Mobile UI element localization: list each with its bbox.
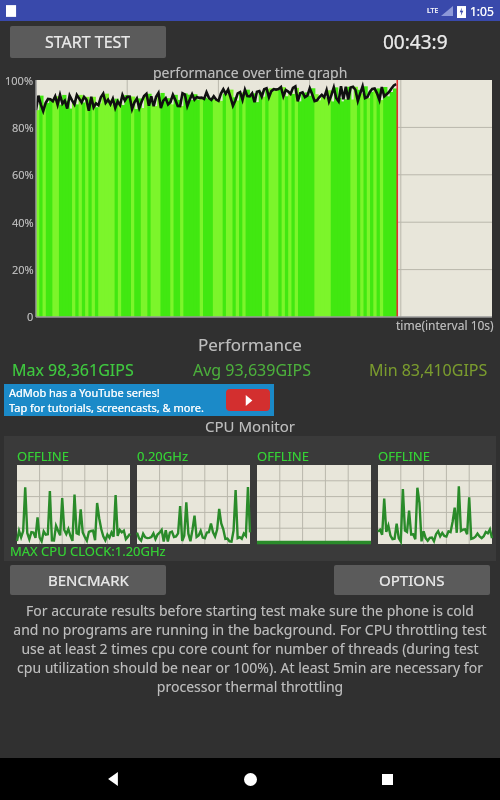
staticText: Min 83,410GIPS [369, 359, 488, 381]
staticText: OFFLINE [17, 447, 69, 465]
button[interactable]: START TEST [10, 26, 166, 58]
staticText: 0 [27, 309, 34, 324]
staticText: Tap for tutorials, screencasts, & more. [9, 400, 204, 415]
staticText: OPTIONS [379, 570, 445, 590]
button[interactable]: AdMob has a YouTube series! [4, 384, 274, 416]
staticText: 0.20GHz [137, 447, 188, 465]
staticText: 20% [12, 262, 34, 277]
staticText: CPU Monitor [0, 416, 500, 436]
button[interactable]: OPTIONS [334, 565, 490, 595]
staticText: 100% [5, 73, 34, 88]
button[interactable]: Back [89, 758, 137, 800]
staticText: For accurate results before starting tes… [12, 601, 488, 696]
staticText: Avg 93,639GIPS [193, 359, 311, 381]
staticText: AdMob has a YouTube series! [9, 385, 160, 400]
staticText: 00:43:9 [383, 29, 448, 55]
staticText: OFFLINE [257, 447, 309, 465]
staticText: Max 98,361GIPS [12, 359, 134, 381]
button[interactable]: Recent apps [363, 758, 411, 800]
staticText: MAX CPU CLOCK:1.20GHz [10, 542, 166, 560]
staticText: OFFLINE [378, 447, 430, 465]
staticText: 1:05 [470, 3, 494, 19]
staticText: Performance [198, 333, 302, 356]
staticText: 40% [12, 215, 34, 230]
staticText: LTE [427, 6, 439, 16]
staticText: time(interval 10s) [396, 317, 494, 333]
staticText: 60% [12, 167, 34, 182]
button[interactable]: Home [226, 758, 274, 800]
staticText: BENCMARK [48, 570, 129, 590]
button[interactable]: BENCMARK [10, 565, 166, 595]
staticText: 80% [12, 120, 34, 135]
staticText: performance over time graph [153, 63, 348, 82]
staticText: START TEST [45, 31, 131, 53]
